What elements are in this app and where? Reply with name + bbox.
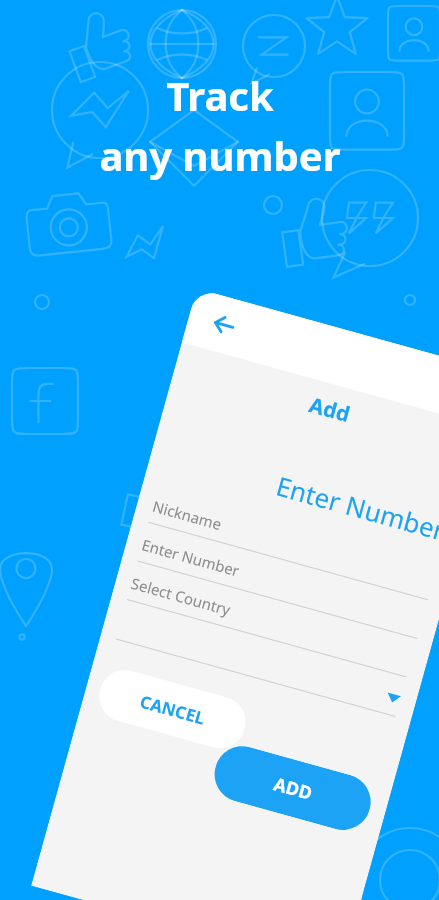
staticText: Enter Number: [140, 534, 242, 581]
button[interactable]: Select Country: [127, 573, 414, 677]
staticText: Nickname: [150, 496, 224, 534]
staticText: any number: [99, 128, 341, 182]
staticText: Select Country: [129, 573, 233, 619]
staticText: Add: [306, 390, 354, 429]
staticText: Track: [166, 68, 274, 122]
button[interactable]: Enter Number: [138, 534, 424, 639]
button[interactable]: Nickname: [148, 496, 435, 600]
button[interactable]: Select country dropdown: [116, 611, 403, 717]
staticText: CANCEL: [137, 690, 208, 730]
staticText: ADD: [271, 771, 315, 806]
button[interactable]: ADD: [208, 740, 377, 836]
button[interactable]: CANCEL: [93, 664, 251, 754]
button[interactable]: Back: [202, 303, 246, 347]
staticText: Enter Number: [272, 467, 439, 548]
